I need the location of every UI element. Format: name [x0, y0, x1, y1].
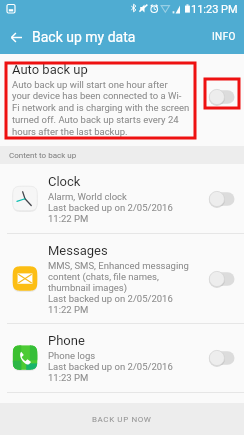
- staticText: Auto back up will start one hour after y…: [12, 79, 190, 138]
- button[interactable]: BACK UP NOW: [0, 403, 244, 435]
- staticText: BACK UP NOW: [92, 415, 152, 424]
- button[interactable]: Clock: [0, 164, 244, 233]
- button[interactable]: Clock toggle: [200, 164, 244, 233]
- button[interactable]: INFO: [205, 20, 244, 54]
- staticText: Phone logs: [48, 350, 96, 361]
- button[interactable]: Phone: [0, 324, 244, 392]
- button[interactable]: Messages: [0, 234, 244, 323]
- staticText: thumbnail images): [48, 282, 128, 293]
- staticText: Last backed up on 2/05/2016: [48, 293, 173, 304]
- staticText: INFO: [212, 31, 236, 43]
- staticText: MMS, SMS, Enhanced messaging: [48, 260, 189, 271]
- staticText: Alarm, World clock: [48, 191, 127, 202]
- staticText: Last backed up on 2/05/2016: [48, 202, 173, 213]
- staticText: Back up my data: [32, 29, 136, 45]
- staticText: Auto back up: [12, 62, 88, 77]
- button[interactable]: Back: [0, 20, 32, 54]
- button[interactable]: Messages toggle: [200, 234, 244, 323]
- staticText: content (chats, file names,: [48, 271, 159, 282]
- staticText: 11:22 PM: [48, 213, 89, 224]
- staticText: 11:23 PM: [48, 372, 89, 383]
- staticText: Clock: [48, 174, 81, 189]
- button[interactable]: Auto back up toggle: [200, 80, 244, 114]
- button[interactable]: Phone toggle: [200, 324, 244, 392]
- staticText: 11:23 PM: [191, 3, 238, 16]
- staticText: Phone: [48, 333, 85, 348]
- staticText: 11:22 PM: [48, 304, 89, 315]
- staticText: Last backed up on 2/05/2016: [48, 361, 173, 372]
- staticText: Messages: [48, 243, 108, 258]
- staticText: Content to back up: [9, 151, 77, 160]
